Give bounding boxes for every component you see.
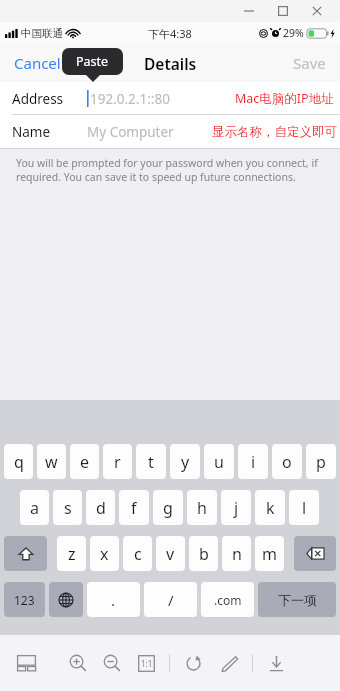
button[interactable]: s	[53, 490, 82, 525]
button[interactable]: m	[255, 536, 284, 571]
staticText: 29%	[283, 26, 304, 40]
staticText: d	[96, 497, 106, 519]
button[interactable]: Rotate	[179, 649, 207, 677]
button[interactable]: .com	[201, 582, 254, 617]
staticText: t	[148, 451, 154, 473]
button[interactable]: u	[204, 444, 234, 479]
staticText: j	[234, 497, 239, 519]
button[interactable]: /	[144, 582, 197, 617]
button[interactable]: d	[86, 490, 115, 525]
button[interactable]: b	[189, 536, 218, 571]
staticText: b	[199, 543, 209, 565]
button[interactable]: r	[103, 444, 132, 479]
button[interactable]: Actual size	[132, 649, 160, 677]
button[interactable]: f	[119, 490, 149, 525]
button[interactable]: q	[4, 444, 33, 479]
staticText: i	[251, 451, 256, 473]
staticText: You will be prompted for your password w…	[16, 156, 326, 184]
staticText: y	[181, 451, 190, 473]
button[interactable]: Name	[0, 115, 340, 148]
button[interactable]: z	[57, 536, 86, 571]
staticText: s	[64, 497, 72, 519]
staticText: p	[316, 451, 326, 473]
staticText: a	[30, 497, 39, 519]
button[interactable]: 123	[4, 582, 45, 617]
button[interactable]: Zoom out	[98, 649, 126, 677]
staticText: /	[168, 590, 174, 610]
staticText: x	[100, 543, 109, 565]
button[interactable]: Address	[0, 82, 340, 115]
button[interactable]: p	[306, 444, 336, 479]
button[interactable]: v	[156, 536, 185, 571]
button[interactable]: Save	[293, 44, 326, 82]
button[interactable]: g	[153, 490, 183, 525]
staticText: .	[111, 590, 116, 610]
staticText: l	[302, 497, 307, 519]
button[interactable]: Backspace	[294, 536, 336, 571]
button[interactable]: Minimize	[232, 0, 266, 22]
button[interactable]: x	[90, 536, 119, 571]
staticText: k	[266, 497, 275, 519]
staticText: g	[163, 497, 173, 519]
button[interactable]: Download	[262, 649, 290, 677]
staticText: 123	[14, 592, 35, 608]
button[interactable]: o	[272, 444, 302, 479]
staticText: Address	[12, 90, 64, 108]
staticText: w	[45, 451, 58, 473]
button[interactable]: Shift	[4, 536, 47, 571]
button[interactable]: k	[255, 490, 285, 525]
staticText: 下午4:38	[148, 26, 192, 41]
button[interactable]: .	[87, 582, 140, 617]
button[interactable]: Paste	[62, 48, 123, 75]
staticText: 1:1	[141, 658, 153, 669]
staticText: m	[262, 543, 277, 565]
staticText: Name	[12, 123, 51, 141]
button[interactable]: Close	[300, 0, 334, 22]
button[interactable]: e	[70, 444, 99, 479]
staticText: 显示名称，自定义即可	[212, 124, 337, 140]
staticText: My Computer	[87, 123, 174, 141]
staticText: v	[166, 543, 175, 565]
staticText: z	[68, 543, 76, 565]
staticText: .com	[214, 592, 242, 608]
staticText: Cancel	[14, 53, 61, 73]
button[interactable]: Layout	[12, 649, 40, 677]
button[interactable]: 下一项	[258, 582, 336, 617]
staticText: Save	[293, 53, 326, 73]
button[interactable]: a	[20, 490, 49, 525]
button[interactable]: Maximize	[266, 0, 300, 22]
staticText: Mac电脑的IP地址	[235, 90, 334, 107]
staticText: r	[114, 451, 121, 473]
staticText: f	[131, 497, 137, 519]
button[interactable]: h	[187, 490, 217, 525]
button[interactable]: Edit	[215, 649, 243, 677]
staticText: q	[14, 451, 24, 473]
button[interactable]: y	[170, 444, 200, 479]
button[interactable]: Cancel	[14, 44, 61, 82]
staticText: 192.0.2.1::80	[90, 90, 170, 108]
staticText: n	[232, 543, 242, 565]
button[interactable]: Zoom in	[64, 649, 92, 677]
button[interactable]: t	[136, 444, 166, 479]
staticText: 下一项	[278, 592, 317, 608]
button[interactable]: n	[222, 536, 251, 571]
button[interactable]: c	[123, 536, 152, 571]
staticText: h	[197, 497, 207, 519]
staticText: o	[282, 451, 292, 473]
button[interactable]: Change keyboard	[49, 582, 83, 617]
staticText: c	[134, 543, 142, 565]
button[interactable]: w	[37, 444, 66, 479]
staticText: e	[80, 451, 90, 473]
staticText: u	[214, 451, 224, 473]
staticText: Details	[144, 53, 197, 74]
button[interactable]: i	[238, 444, 268, 479]
staticText: Paste	[76, 53, 109, 70]
button[interactable]: j	[221, 490, 251, 525]
staticText: 中国联通	[21, 27, 63, 40]
button[interactable]: l	[289, 490, 319, 525]
